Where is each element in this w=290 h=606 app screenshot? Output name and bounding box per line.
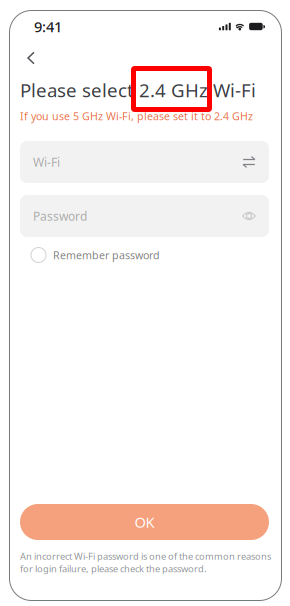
- staticText: Wi-Fi: [33, 154, 60, 170]
- button[interactable]: Remember password: [31, 244, 269, 266]
- button[interactable]: OK: [20, 504, 269, 540]
- staticText: Password: [33, 208, 87, 224]
- staticText: OK: [134, 512, 154, 532]
- staticText: Remember password: [53, 248, 160, 262]
- staticText: Please select 2.4 GHz Wi-Fi: [20, 78, 256, 102]
- staticText: An incorrect Wi-Fi password is one of th…: [20, 550, 271, 575]
- button[interactable]: Switch Wi-Fi network: [236, 149, 262, 175]
- staticText: If you use 5 GHz Wi-Fi, please set it to…: [20, 109, 253, 123]
- button[interactable]: Show password: [236, 203, 262, 229]
- staticText: 9:41: [34, 17, 62, 36]
- button[interactable]: Back: [18, 45, 44, 71]
